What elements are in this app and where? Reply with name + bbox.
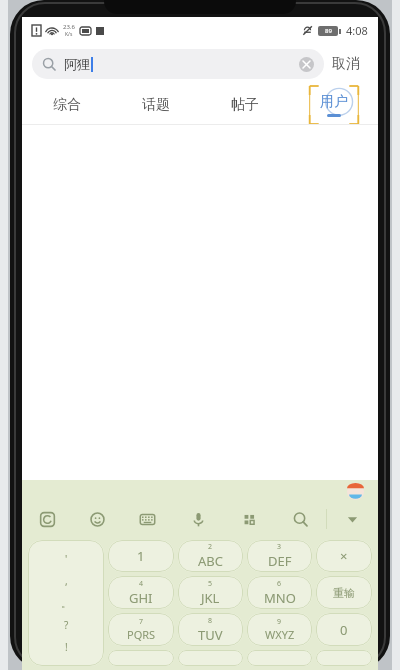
staticText: 阿狸 (64, 56, 90, 72)
button[interactable]: 用户 (289, 85, 378, 125)
staticText: ' (65, 552, 68, 566)
staticText: 0 (340, 621, 348, 639)
button[interactable]: Keyboard layout (122, 502, 173, 536)
button[interactable]: Hide keyboard (327, 502, 378, 536)
staticText: ? (64, 618, 69, 632)
button[interactable]: Emoji (72, 502, 122, 536)
button[interactable]: 0 (316, 613, 372, 646)
button[interactable]: 6 (247, 576, 312, 609)
staticText: 7 (139, 617, 144, 627)
button[interactable]: Clear text (299, 57, 314, 72)
button[interactable]: 帖子 (200, 85, 289, 125)
staticText: DEF (268, 552, 292, 570)
button[interactable] (316, 650, 372, 666)
button[interactable]: 9 (247, 613, 312, 646)
button[interactable]: 综合 (22, 85, 111, 125)
button[interactable]: Sogou input (22, 502, 72, 536)
staticText: 23.6 (63, 23, 75, 31)
button[interactable]: 重输 (316, 576, 372, 609)
staticText: 3 (277, 542, 282, 552)
button[interactable]: 2 (178, 540, 243, 572)
staticText: 1 (137, 547, 145, 565)
staticText: 4 (139, 579, 144, 589)
button[interactable]: More tools (224, 502, 275, 536)
staticText: , (65, 574, 68, 588)
button[interactable]: 7 (108, 613, 174, 646)
button[interactable]: 4 (108, 576, 174, 609)
staticText: 重输 (333, 586, 355, 600)
button[interactable]: 3 (247, 540, 312, 572)
staticText: K/s (65, 31, 73, 38)
staticText: 89 (325, 27, 332, 35)
staticText: 帖子 (231, 96, 259, 114)
staticText: 4:08 (346, 23, 368, 38)
button[interactable] (247, 650, 312, 666)
button[interactable]: 阿狸 (32, 49, 324, 79)
staticText: 5 (208, 579, 213, 589)
button[interactable]: 1 (108, 540, 174, 572)
staticText: ! (65, 640, 68, 654)
staticText: 。 (61, 597, 71, 610)
staticText: WXYZ (265, 627, 295, 642)
button[interactable] (178, 650, 243, 666)
button[interactable]: 话题 (111, 85, 200, 125)
button[interactable]: ' (28, 540, 104, 666)
staticText: 6 (277, 579, 282, 589)
staticText: 2 (208, 542, 213, 552)
staticText: × (340, 547, 348, 565)
button[interactable] (108, 650, 174, 666)
staticText: PQRS (127, 627, 156, 642)
button[interactable]: 5 (178, 576, 243, 609)
staticText: 用户 (320, 93, 348, 111)
button[interactable]: Voice input (173, 502, 224, 536)
button[interactable]: Search (275, 502, 326, 536)
staticText: TUV (198, 626, 223, 644)
staticText: GHI (129, 589, 153, 607)
button[interactable]: 8 (178, 613, 243, 646)
staticText: 话题 (142, 96, 170, 114)
staticText: 综合 (53, 96, 81, 114)
staticText: 取消 (332, 55, 360, 73)
button[interactable]: × (316, 540, 372, 572)
staticText: ABC (198, 552, 223, 570)
staticText: JKL (201, 589, 220, 607)
button[interactable]: Sticker suggestion (347, 483, 364, 500)
staticText: 9 (277, 617, 282, 627)
button[interactable]: 取消 (324, 49, 368, 79)
staticText: 8 (208, 616, 213, 626)
staticText: MNO (264, 589, 296, 607)
